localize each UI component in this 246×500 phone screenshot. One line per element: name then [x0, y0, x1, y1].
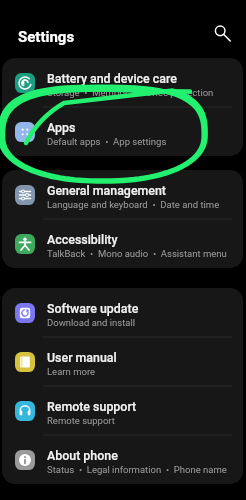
staticText: Apps [47, 120, 76, 135]
staticText: Storage • Memory • Device protection [47, 87, 214, 98]
staticText: Status • Legal information • Phone name [47, 464, 227, 475]
staticText: Learn more [47, 366, 96, 377]
button[interactable]: Apps [2, 107, 243, 156]
button[interactable]: Remote support [2, 386, 243, 435]
staticText: TalkBack • Mono audio • Assistant menu [47, 248, 227, 259]
staticText: Battery and device care [47, 71, 177, 86]
staticText: Remote support [47, 415, 115, 426]
button[interactable]: General management [2, 170, 243, 219]
button[interactable]: User manual [2, 337, 243, 386]
button[interactable]: Software update [2, 288, 243, 337]
staticText: Accessibility [47, 232, 118, 247]
button[interactable]: Battery and device care [2, 58, 243, 107]
staticText: Download and install [47, 317, 136, 328]
staticText: General management [47, 183, 166, 198]
button[interactable]: Search [208, 19, 236, 47]
staticText: User manual [47, 350, 117, 365]
staticText: Remote support [47, 399, 137, 414]
button[interactable]: About phone [2, 435, 243, 484]
staticText: Software update [47, 301, 139, 316]
staticText: Default apps • App settings [47, 136, 167, 147]
staticText: Language and keyboard • Date and time [47, 199, 220, 210]
staticText: About phone [47, 448, 118, 463]
staticText: Settings [18, 28, 75, 46]
button[interactable]: Accessibility [2, 219, 243, 268]
